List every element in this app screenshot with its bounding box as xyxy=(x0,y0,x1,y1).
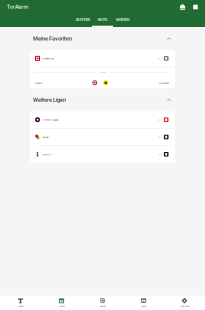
staticText: Heute xyxy=(58,304,64,307)
staticText: Ligen xyxy=(18,304,23,307)
staticText: News xyxy=(140,304,146,307)
staticText: Serie A xyxy=(42,153,51,156)
button[interactable]: Cloud sync xyxy=(176,1,189,13)
button[interactable]: HEUTE xyxy=(92,14,112,27)
staticText: Optionen xyxy=(180,304,189,307)
staticText: 17 xyxy=(158,153,160,156)
staticText: TorAlarm xyxy=(7,4,28,10)
button[interactable]: Premier League xyxy=(30,111,175,128)
button[interactable]: LaLiga xyxy=(30,129,175,145)
staticText: Bayern xyxy=(35,81,42,84)
button[interactable]: 20:30 xyxy=(30,67,175,88)
button[interactable]: Serie A xyxy=(30,146,175,163)
staticText: Meine Favoriten xyxy=(33,35,72,42)
button[interactable]: Collapse Weitere Ligen xyxy=(164,94,174,106)
staticText: MORGEN xyxy=(116,18,129,22)
button[interactable]: Optionen xyxy=(164,295,205,310)
button[interactable]: Bundesliga xyxy=(30,50,175,67)
staticText: Meine xyxy=(99,304,105,307)
button[interactable]: Meine xyxy=(82,295,123,310)
staticText: Premier League xyxy=(42,118,58,121)
button[interactable]: Search xyxy=(189,1,202,13)
staticText: HEUTE xyxy=(97,18,107,22)
staticText: LaLiga xyxy=(42,135,48,138)
staticText: Bundesliga xyxy=(42,57,53,60)
button[interactable]: Collapse Meine Favoriten xyxy=(164,32,174,44)
staticText: 20 xyxy=(158,118,160,121)
button[interactable]: Ligen xyxy=(0,295,41,310)
staticText: 20 xyxy=(158,135,160,138)
staticText: 20:30 xyxy=(100,71,105,74)
staticText: Dortmund xyxy=(158,81,168,84)
button[interactable]: GESTERN xyxy=(72,14,92,27)
button[interactable]: MORGEN xyxy=(112,14,132,27)
staticText: 26 xyxy=(158,57,160,60)
staticText: GESTERN xyxy=(75,18,89,22)
button[interactable]: Heute xyxy=(41,295,82,310)
staticText: Weitere Ligen xyxy=(33,96,66,103)
button[interactable]: News xyxy=(123,295,164,310)
